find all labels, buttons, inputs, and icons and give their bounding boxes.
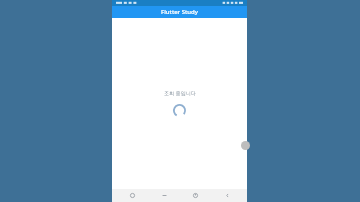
button[interactable]: Recents [121,189,143,202]
button[interactable]: Home [184,189,206,202]
staticText: Flutter Study [161,8,198,16]
staticText: 조회 중입니다 [164,90,196,97]
button[interactable]: Menu [153,189,175,202]
button[interactable]: Back [216,189,238,202]
button[interactable]: Debug handle [241,141,250,150]
